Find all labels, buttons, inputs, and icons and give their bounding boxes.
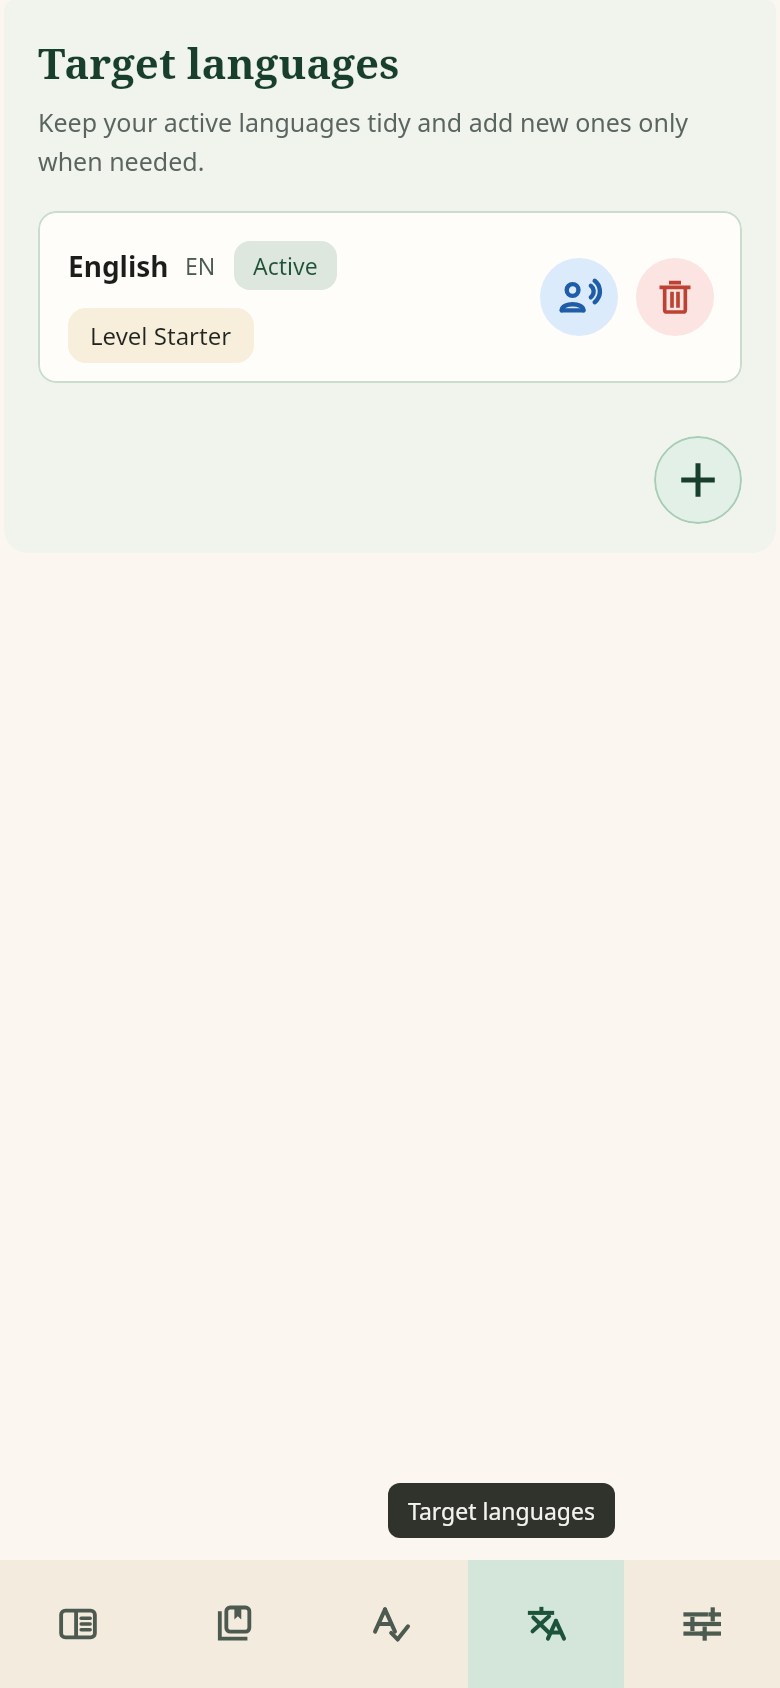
staticText: Keep your active languages tidy and add …: [38, 105, 742, 179]
staticText: Active: [253, 250, 318, 281]
button[interactable]: English: [38, 211, 742, 383]
button[interactable]: Spellcheck: [312, 1560, 468, 1688]
button[interactable]: Add language: [654, 436, 742, 524]
button[interactable]: Pronounce: [540, 258, 618, 336]
staticText: Level Starter: [90, 319, 232, 352]
staticText: Target languages: [408, 1495, 595, 1526]
button[interactable]: Reader: [0, 1560, 156, 1688]
button[interactable]: Library: [156, 1560, 312, 1688]
button[interactable]: Active: [234, 241, 337, 290]
button[interactable]: Delete: [636, 258, 714, 336]
staticText: EN: [185, 250, 216, 281]
button[interactable]: Settings: [624, 1560, 780, 1688]
button[interactable]: Target languages: [468, 1560, 624, 1688]
staticText: English: [68, 247, 169, 285]
staticText: Target languages: [38, 34, 400, 91]
